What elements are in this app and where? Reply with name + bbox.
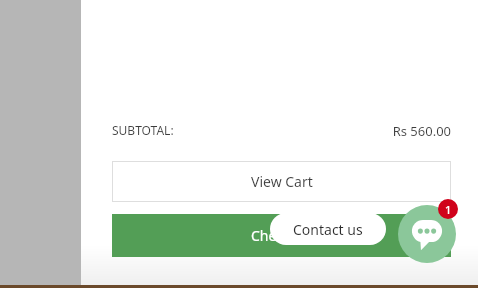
button[interactable]: Contact us chat bbox=[398, 205, 456, 263]
staticText: Rs 560.00 bbox=[392, 122, 451, 140]
button[interactable]: Contact us bbox=[270, 213, 386, 245]
staticText: Checkout bbox=[251, 226, 313, 245]
staticText: 1 bbox=[445, 202, 452, 217]
staticText: View Cart bbox=[251, 172, 313, 191]
staticText: SUBTOTAL: bbox=[112, 122, 174, 138]
button[interactable]: Checkout bbox=[112, 214, 451, 257]
staticText: Contact us bbox=[293, 220, 363, 239]
button[interactable]: View Cart bbox=[112, 161, 451, 202]
